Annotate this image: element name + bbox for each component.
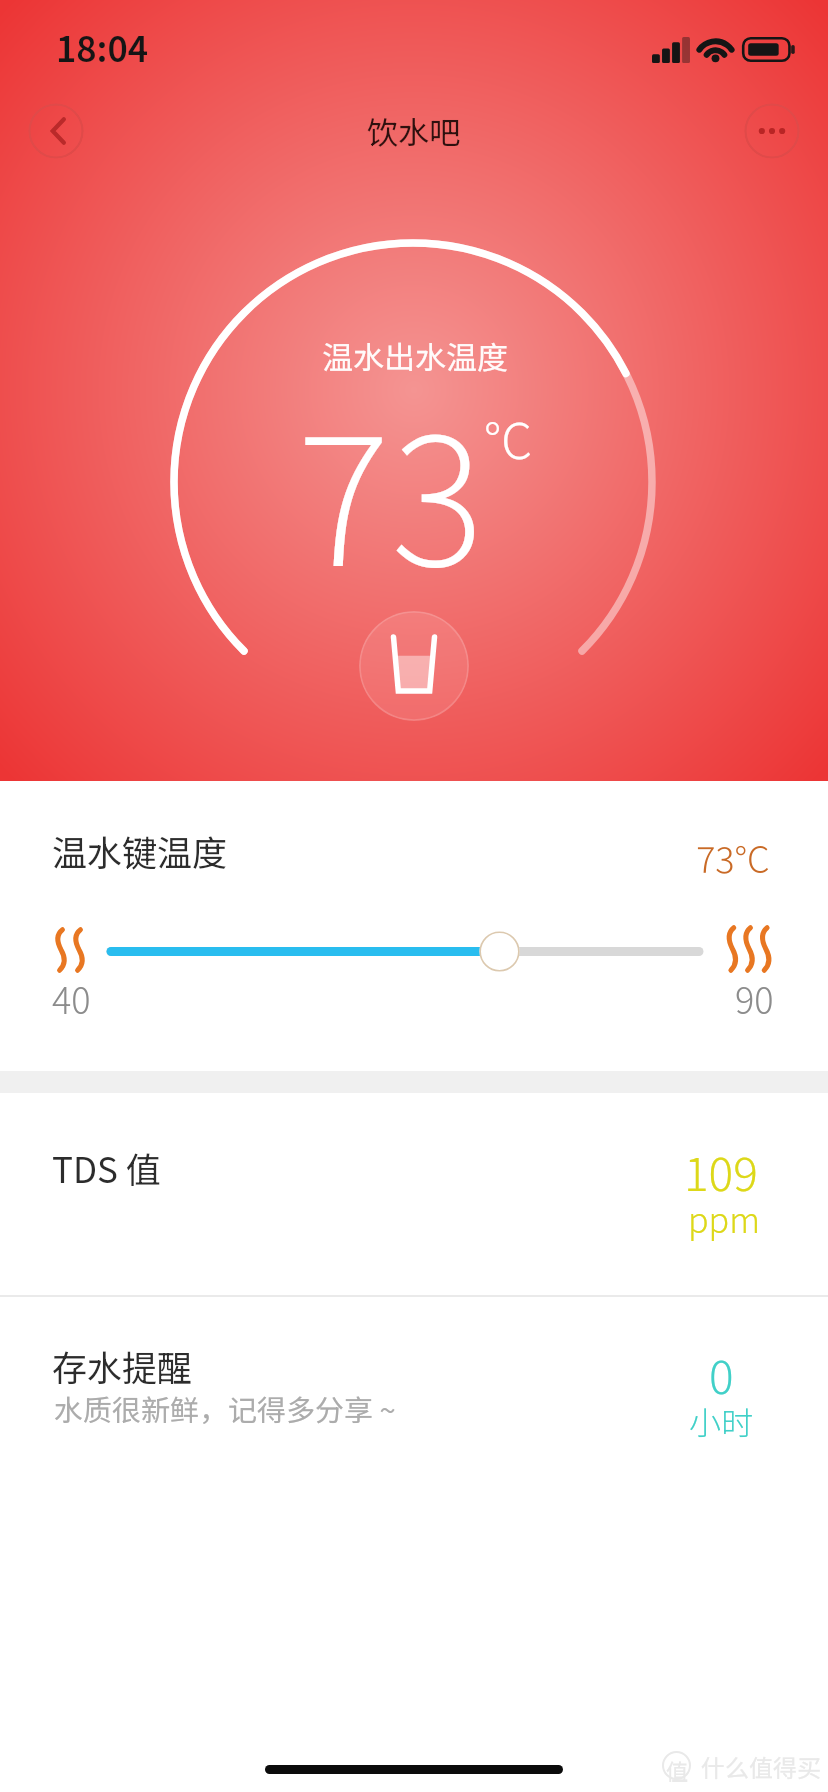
staticText: 90 xyxy=(735,972,774,1024)
button[interactable]: TDS 值 xyxy=(0,1093,828,1295)
button[interactable]: 存水提醒 xyxy=(0,1297,828,1507)
staticText: 水质很新鲜，记得多分享 ~ xyxy=(54,1387,396,1429)
staticText: 73 xyxy=(297,362,485,617)
staticText: 18:04 xyxy=(56,21,149,72)
staticText: TDS 值 xyxy=(52,1142,161,1193)
staticText: 什么值得买 xyxy=(701,1749,821,1784)
staticText: 73°C xyxy=(696,831,770,883)
staticText: 109 xyxy=(684,1138,758,1205)
staticText: °C xyxy=(484,402,532,473)
staticText: 温水出水温度 xyxy=(322,333,508,378)
staticText: 温水键温度 xyxy=(52,825,228,876)
staticText: 40 xyxy=(52,972,91,1024)
button[interactable]: 温水键温度 xyxy=(0,781,828,1070)
staticText: 饮水吧 xyxy=(367,108,460,153)
staticText: 值 xyxy=(666,1754,689,1783)
button[interactable]: More options xyxy=(744,103,800,159)
staticText: ppm xyxy=(688,1194,760,1243)
staticText: 小时 xyxy=(689,1398,754,1444)
button[interactable]: Dispense water xyxy=(359,611,469,721)
staticText: 0 xyxy=(709,1341,734,1408)
button[interactable]: Warm water temperature slider, 73 degree… xyxy=(95,927,715,975)
staticText: 存水提醒 xyxy=(52,1340,193,1391)
button[interactable]: Back xyxy=(28,103,84,159)
